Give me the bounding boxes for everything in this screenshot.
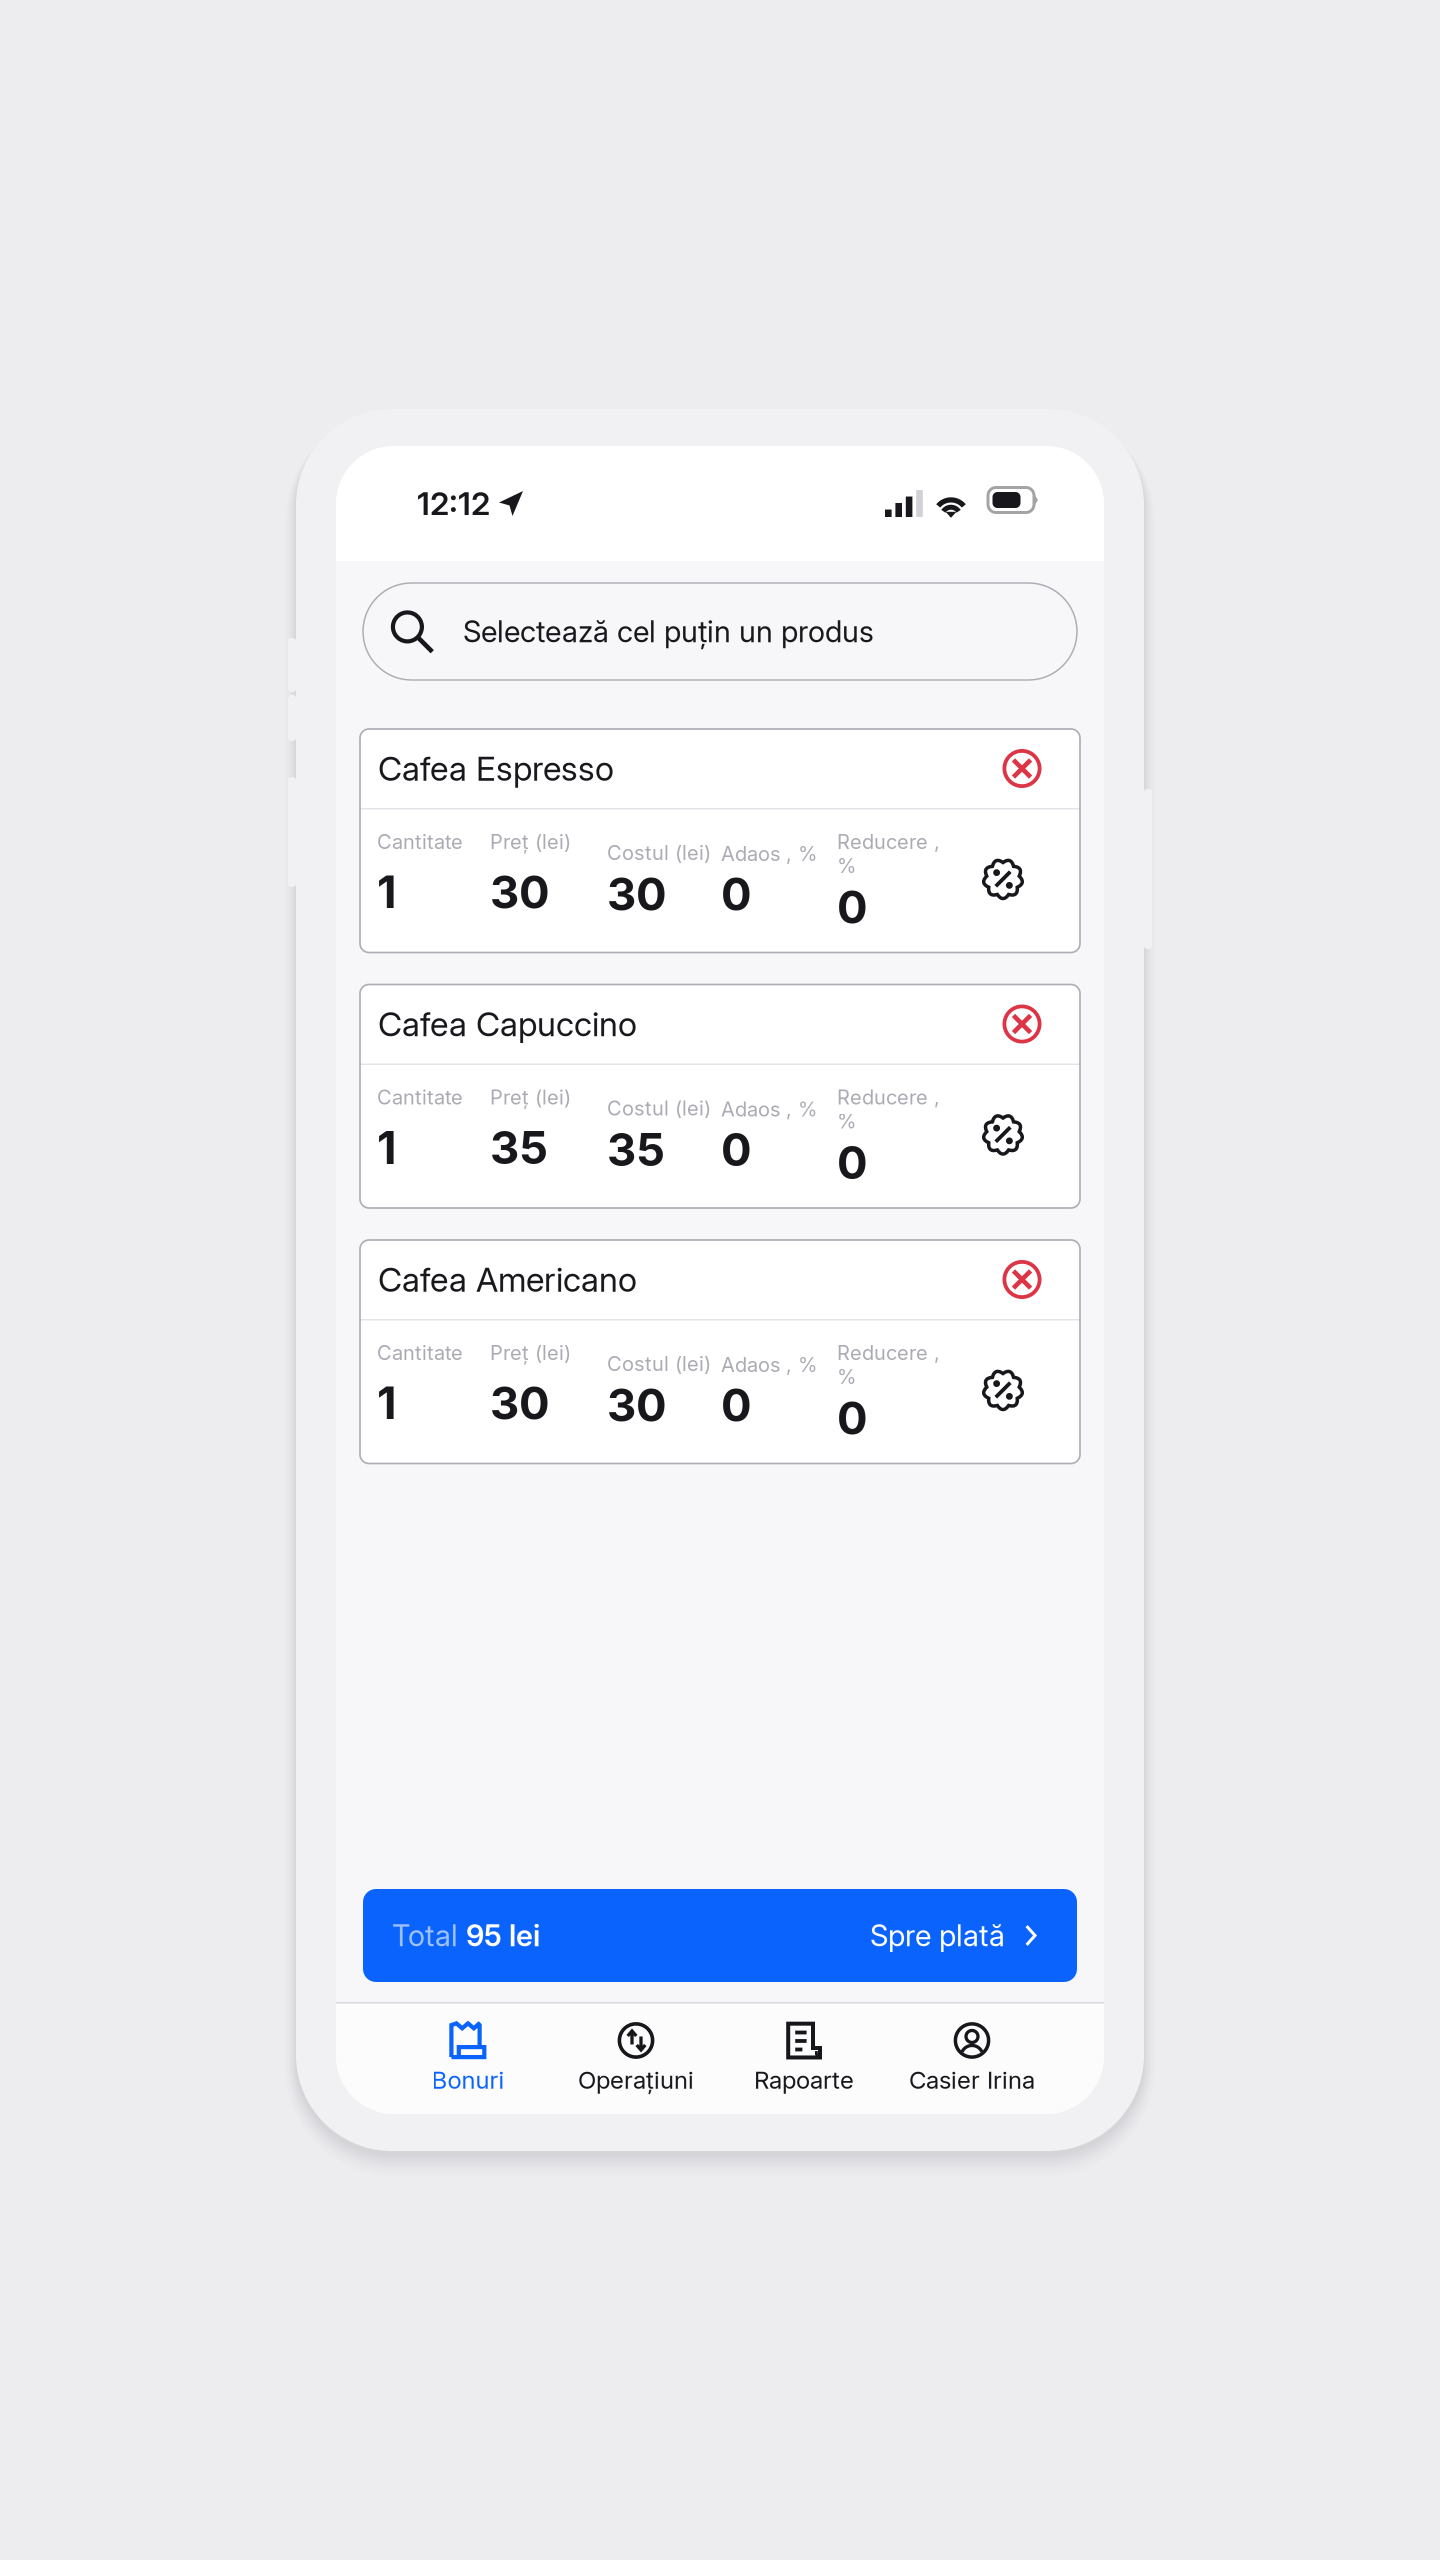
staticText: Operațiuni <box>578 2065 694 2094</box>
staticText: 12:12 <box>417 484 490 523</box>
staticText: 1 <box>377 1120 397 1175</box>
staticText: Reducere , <box>837 1340 940 1365</box>
staticText: 0 <box>721 1122 752 1177</box>
staticText: % <box>837 1109 856 1133</box>
staticText: Costul (lei) <box>607 840 711 865</box>
staticText: 30 <box>490 864 550 919</box>
staticText: 0 <box>837 1135 868 1190</box>
staticText: Cafea Capuccino <box>378 1004 637 1044</box>
staticText: 1 <box>377 1375 397 1430</box>
staticText: 35 <box>607 1122 665 1177</box>
staticText: 30 <box>490 1375 550 1430</box>
button[interactable]: Remove Cafea Espresso <box>995 741 1049 795</box>
staticText: 30 <box>607 1377 667 1432</box>
staticText: 95 lei <box>466 1918 540 1953</box>
staticText: 0 <box>837 1390 868 1445</box>
button[interactable]: Rapoarte <box>720 2012 888 2104</box>
button[interactable]: Total <box>363 1889 1077 1982</box>
button[interactable]: Selectează cel puțin un produs <box>363 583 1077 680</box>
staticText: % <box>837 1365 856 1389</box>
staticText: Spre plată <box>870 1918 1005 1953</box>
staticText: Cafea Espresso <box>378 748 614 789</box>
staticText: Cantitate <box>377 829 463 854</box>
staticText: 0 <box>721 866 752 921</box>
staticText: % <box>837 854 856 878</box>
staticText: Preț (lei) <box>490 1085 571 1109</box>
button[interactable]: Remove Cafea Capuccino <box>995 997 1049 1051</box>
staticText: Bonuri <box>431 2065 504 2094</box>
button[interactable]: Casier Irina <box>888 2012 1056 2104</box>
button[interactable]: Apply discount <box>975 1106 1031 1162</box>
button[interactable]: Operațiuni <box>552 2012 720 2104</box>
staticText: Cantitate <box>377 1085 463 1109</box>
button[interactable]: Remove Cafea Americano <box>995 1252 1049 1306</box>
staticText: Costul (lei) <box>607 1096 711 1120</box>
staticText: 35 <box>490 1120 548 1175</box>
button[interactable]: Apply discount <box>975 851 1031 907</box>
staticText: Preț (lei) <box>490 829 571 854</box>
staticText: Reducere , <box>837 1085 940 1109</box>
button[interactable]: Bonuri <box>384 2012 552 2104</box>
staticText: Adaos , % <box>721 1352 817 1377</box>
staticText: Selectează cel puțin un produs <box>463 614 874 649</box>
staticText: Total <box>392 1918 466 1953</box>
staticText: Rapoarte <box>754 2065 854 2094</box>
staticText: Casier Irina <box>909 2065 1035 2094</box>
staticText: Costul (lei) <box>607 1351 711 1376</box>
staticText: 0 <box>721 1377 752 1432</box>
staticText: Adaos , % <box>721 841 817 866</box>
staticText: 0 <box>837 879 868 934</box>
staticText: Preț (lei) <box>490 1340 571 1365</box>
staticText: 1 <box>377 864 397 919</box>
staticText: Cafea Americano <box>378 1259 637 1300</box>
staticText: Cantitate <box>377 1340 463 1365</box>
button[interactable]: Apply discount <box>975 1362 1031 1418</box>
staticText: Adaos , % <box>721 1097 817 1121</box>
staticText: 30 <box>607 866 667 921</box>
staticText: Reducere , <box>837 829 940 854</box>
